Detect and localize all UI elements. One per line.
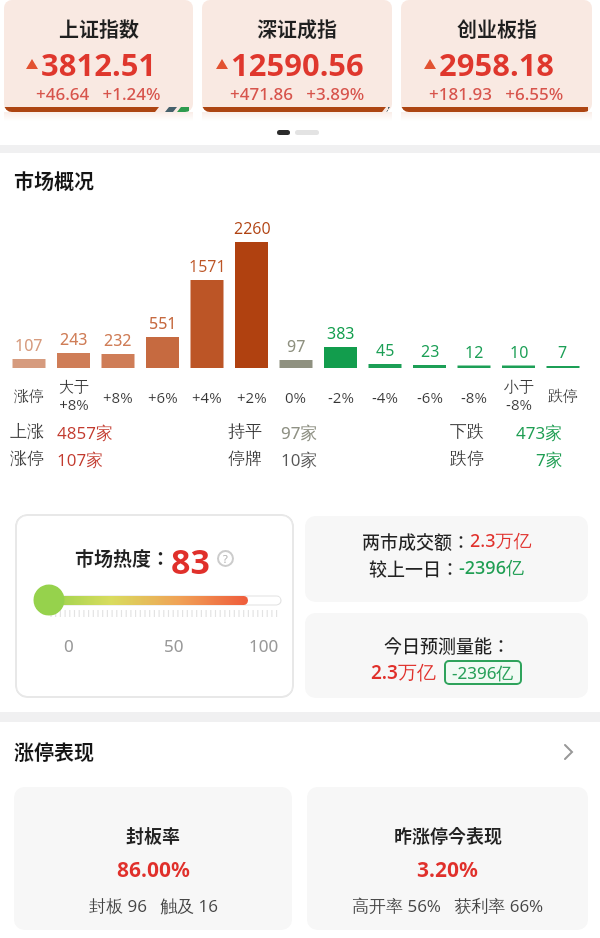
staticText: 10家 xyxy=(281,448,318,471)
button[interactable]: 市场热度： xyxy=(15,514,294,698)
staticText: 86.00% xyxy=(117,855,190,884)
staticText: 深证成指 xyxy=(257,14,337,43)
staticText: +471.86 +3.89% xyxy=(230,82,365,105)
staticText: 4857家 xyxy=(57,421,113,444)
staticText: 473家 xyxy=(516,421,563,444)
staticText: 封板 96 触及 16 xyxy=(89,894,218,917)
staticText: +4% xyxy=(192,387,222,407)
staticText: +8% xyxy=(103,387,133,407)
staticText: 243 xyxy=(60,328,88,350)
staticText: -6% xyxy=(417,387,443,407)
staticText: 232 xyxy=(104,329,132,351)
staticText: +2% xyxy=(237,387,267,407)
staticText: 上涨 xyxy=(10,421,44,442)
staticText: -2396亿 xyxy=(459,555,524,580)
staticText: 2958.18 xyxy=(439,43,555,85)
staticText: 2.3万亿 xyxy=(470,528,532,553)
staticText: -2396亿 xyxy=(452,661,514,684)
staticText: 市场概况 xyxy=(14,166,94,195)
staticText: 0% xyxy=(285,387,307,407)
button[interactable]: 今日预测量能： xyxy=(305,613,588,698)
staticText: +181.93 +6.55% xyxy=(429,82,564,105)
staticText: 12 xyxy=(465,341,484,363)
staticText: 23 xyxy=(421,340,440,362)
staticText: 市场热度： xyxy=(75,544,171,572)
staticText: 12590.56 xyxy=(231,43,364,85)
button[interactable]: 昨涨停今表现 xyxy=(307,787,588,930)
staticText: 83 xyxy=(171,538,210,578)
staticText: 97 xyxy=(287,335,306,357)
staticText: 两市成交额： xyxy=(362,528,470,554)
button[interactable]: 深证成指 xyxy=(202,0,392,112)
staticText: 551 xyxy=(149,312,177,334)
staticText: 7 xyxy=(558,341,568,363)
staticText: 107 xyxy=(15,334,43,356)
staticText: 10 xyxy=(510,341,529,363)
staticText: 50 xyxy=(164,634,184,657)
staticText: 97家 xyxy=(281,421,318,444)
staticText: 383 xyxy=(327,322,355,344)
staticText: 小于 -8% xyxy=(504,378,534,415)
staticText: 下跌 xyxy=(450,421,484,442)
button[interactable]: 创业板指 xyxy=(401,0,592,112)
staticText: 跌停 xyxy=(548,387,578,406)
staticText: 大于 +8% xyxy=(59,378,89,415)
staticText: 封板率 xyxy=(126,822,180,848)
staticText: -2% xyxy=(328,387,354,407)
staticText: 2260 xyxy=(234,217,271,239)
staticText: 上证指数 xyxy=(59,14,139,43)
staticText: -4% xyxy=(372,387,398,407)
staticText: 0 xyxy=(64,634,74,657)
staticText: 107家 xyxy=(57,448,104,471)
button[interactable]: 封板率 xyxy=(14,787,292,930)
staticText: 100 xyxy=(249,634,279,657)
staticText: 45 xyxy=(376,339,395,361)
staticText: 1571 xyxy=(189,255,226,277)
staticText: 停牌 xyxy=(228,448,262,469)
staticText: 3812.51 xyxy=(41,43,157,85)
staticText: 今日预测量能： xyxy=(384,632,510,658)
staticText: 2.3万亿 xyxy=(371,659,436,685)
button[interactable] xyxy=(562,742,576,762)
staticText: 跌停 xyxy=(450,448,484,469)
staticText: 3.20% xyxy=(417,855,478,884)
staticText: 较上一日： xyxy=(369,555,459,581)
staticText: 涨停 xyxy=(10,448,44,469)
staticText: 持平 xyxy=(228,421,262,442)
staticText: +46.64 +1.24% xyxy=(36,82,161,105)
staticText: -8% xyxy=(461,387,487,407)
button[interactable]: 两市成交额： xyxy=(305,516,588,602)
staticText: +6% xyxy=(148,387,178,407)
staticText: 7家 xyxy=(536,448,563,471)
staticText: 涨停 xyxy=(14,387,44,406)
staticText: ? xyxy=(223,551,228,566)
staticText: 昨涨停今表现 xyxy=(394,822,502,848)
staticText: 创业板指 xyxy=(457,14,537,43)
staticText: 涨停表现 xyxy=(14,737,94,766)
button[interactable]: 上证指数 xyxy=(4,0,193,112)
staticText: 高开率 56% 获利率 66% xyxy=(352,894,544,917)
